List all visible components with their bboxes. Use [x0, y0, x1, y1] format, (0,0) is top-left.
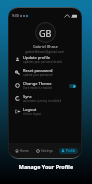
staticText: Gabriel Bhase	[33, 44, 58, 49]
button[interactable]: Home	[13, 148, 31, 154]
staticText: Settings	[41, 149, 53, 153]
button[interactable]: Sync	[9, 92, 81, 105]
staticText: Dark mode is enabled	[23, 86, 52, 90]
button[interactable]: Toggle dark theme	[69, 84, 76, 88]
staticText: 9:30	[12, 13, 19, 18]
staticText: Update profile	[23, 55, 50, 60]
staticText: Reset password	[23, 68, 53, 73]
button[interactable]: Profile	[59, 148, 78, 154]
staticText: Sync	[23, 94, 32, 99]
staticText: Profile	[66, 149, 76, 153]
staticText: Home	[20, 149, 29, 153]
staticText: update your password	[23, 73, 53, 77]
staticText: Logout	[23, 107, 37, 112]
staticText: updates your personal details	[23, 60, 63, 64]
button[interactable]: Reset password	[9, 66, 81, 79]
staticText: gabrielbhase@gmail.com	[25, 49, 65, 53]
button[interactable]: Logout	[9, 105, 81, 118]
staticText: click to logout	[23, 112, 42, 116]
staticText: GB	[39, 27, 52, 39]
staticText: automatic syncing is enabled	[23, 99, 62, 103]
button[interactable]: Update profile	[9, 53, 81, 66]
staticText: Change Theme	[23, 81, 52, 86]
button[interactable]: Change Theme	[9, 79, 81, 92]
button[interactable]: Settings	[34, 148, 55, 154]
staticText: Manage Your Profile	[0, 163, 92, 170]
